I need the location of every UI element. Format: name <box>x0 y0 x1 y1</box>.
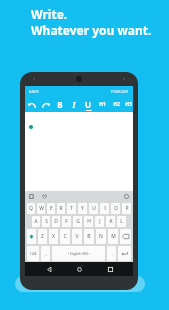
staticText: Q <box>29 205 33 212</box>
button[interactable]: K <box>106 216 115 227</box>
button[interactable]: A <box>32 216 40 227</box>
staticText: I <box>72 99 76 110</box>
button[interactable]: X <box>49 229 58 244</box>
button[interactable]: N <box>96 229 106 244</box>
button[interactable]: SAVE <box>29 89 39 94</box>
button[interactable]: P <box>122 203 131 214</box>
button[interactable]: Back <box>42 262 56 276</box>
staticText: Whatever you want. <box>31 22 152 38</box>
button[interactable]: B <box>53 97 67 112</box>
staticText: M <box>111 233 116 240</box>
button[interactable]: S <box>42 216 50 227</box>
staticText: D <box>54 218 58 225</box>
staticText: I <box>104 205 106 212</box>
staticText: X <box>52 233 55 240</box>
button[interactable]: H1 <box>95 97 109 112</box>
staticText: A <box>34 218 38 225</box>
staticText: . <box>111 251 113 257</box>
button[interactable]: Y <box>78 203 87 214</box>
staticText: , <box>45 251 47 257</box>
button[interactable]: Clipboard <box>28 193 35 200</box>
staticText: L <box>120 218 123 225</box>
button[interactable]: O <box>111 203 120 214</box>
button[interactable]: V <box>72 229 82 244</box>
staticText: • English (UK) • <box>68 252 90 256</box>
button[interactable]: E <box>47 203 55 214</box>
button[interactable]: 12# <box>27 246 39 261</box>
button[interactable]: Emoji <box>123 193 130 200</box>
staticText: G <box>76 218 80 225</box>
staticText: Y <box>81 205 84 212</box>
staticText: H2 <box>113 101 120 108</box>
button[interactable]: M <box>108 229 118 244</box>
staticText: U <box>85 99 92 110</box>
staticText: F <box>65 218 68 225</box>
button[interactable] <box>25 112 133 191</box>
button[interactable]: C <box>60 229 70 244</box>
staticText: W <box>39 205 44 212</box>
staticText: Z <box>41 233 44 240</box>
staticText: PUBLISH <box>111 89 129 94</box>
button[interactable]: , <box>41 246 50 261</box>
button[interactable]: Recents <box>103 262 117 276</box>
staticText: K <box>109 218 113 225</box>
button[interactable]: • English (UK) • <box>52 246 105 261</box>
button[interactable]: J <box>95 216 104 227</box>
staticText: B <box>57 99 63 110</box>
staticText: H <box>87 218 91 225</box>
button[interactable]: B <box>84 229 94 244</box>
staticText: SAVE <box>29 89 39 94</box>
button[interactable]: L <box>117 216 126 227</box>
button[interactable]: U <box>81 97 95 112</box>
button[interactable]: . <box>107 246 116 261</box>
staticText: Write. <box>31 6 68 22</box>
button[interactable]: G <box>73 216 82 227</box>
staticText: U <box>92 205 96 212</box>
staticText: O <box>114 205 118 212</box>
staticText: 12# <box>29 251 37 256</box>
button[interactable]: W <box>37 203 45 214</box>
button[interactable]: Z <box>38 229 47 244</box>
staticText: J <box>99 218 101 225</box>
button[interactable]: Q <box>27 203 35 214</box>
staticText: T <box>70 205 73 212</box>
button[interactable]: Shift <box>27 229 36 244</box>
staticText: B <box>87 233 91 240</box>
staticText: C <box>63 233 67 240</box>
staticText: H1 <box>99 101 106 108</box>
staticText: S <box>45 218 48 225</box>
button[interactable]: I <box>100 203 109 214</box>
button[interactable]: T <box>67 203 76 214</box>
staticText: V <box>75 233 79 240</box>
button[interactable]: Sticker <box>41 193 48 200</box>
button[interactable]: H3 <box>123 97 133 112</box>
staticText: R <box>59 205 63 212</box>
button[interactable]: Backspace <box>120 229 131 244</box>
button[interactable]: H <box>84 216 93 227</box>
staticText: H3 <box>125 101 132 108</box>
staticText: N <box>99 233 103 240</box>
button[interactable]: Redo <box>39 97 53 112</box>
button[interactable]: Undo <box>25 97 39 112</box>
button[interactable]: R <box>57 203 65 214</box>
button[interactable]: Home <box>72 262 86 276</box>
staticText: E <box>50 205 53 212</box>
staticText: P <box>125 205 129 212</box>
button[interactable]: PUBLISH <box>111 89 129 94</box>
button[interactable]: I <box>67 97 81 112</box>
button[interactable]: Enter <box>118 246 131 261</box>
button[interactable]: U <box>89 203 98 214</box>
button[interactable]: F <box>62 216 71 227</box>
button[interactable]: D <box>52 216 60 227</box>
button[interactable]: H2 <box>109 97 123 112</box>
